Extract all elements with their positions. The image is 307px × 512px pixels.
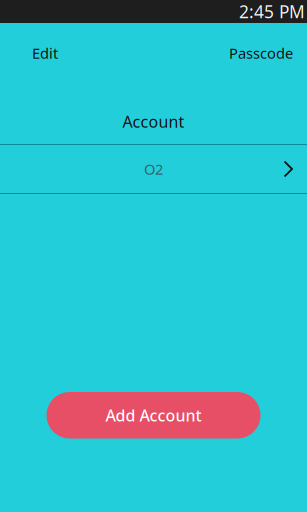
staticText: Passcode [229,43,293,63]
staticText: Add Account [105,405,201,426]
staticText: 2:45 PM [239,0,305,23]
staticText: Edit [32,43,58,63]
button[interactable]: Passcode [218,33,304,73]
staticText: Account [122,111,184,132]
staticText: O2 [144,159,163,179]
button[interactable]: Edit [21,33,69,73]
button[interactable]: Add Account [46,392,260,438]
button[interactable]: O2 [0,145,307,193]
